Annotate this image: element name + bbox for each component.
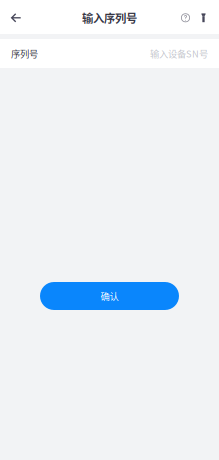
staticText: 输入设备SN号	[150, 47, 208, 60]
button[interactable]: Back	[0, 0, 27, 34]
button[interactable]: 序列号	[0, 39, 219, 68]
staticText: 确认	[100, 289, 118, 303]
button[interactable]: 确认	[40, 282, 179, 310]
button[interactable]: Help	[176, 0, 194, 34]
staticText: 序列号	[11, 47, 38, 60]
staticText: 输入序列号	[82, 10, 137, 26]
button[interactable]: Flashlight	[194, 0, 219, 34]
